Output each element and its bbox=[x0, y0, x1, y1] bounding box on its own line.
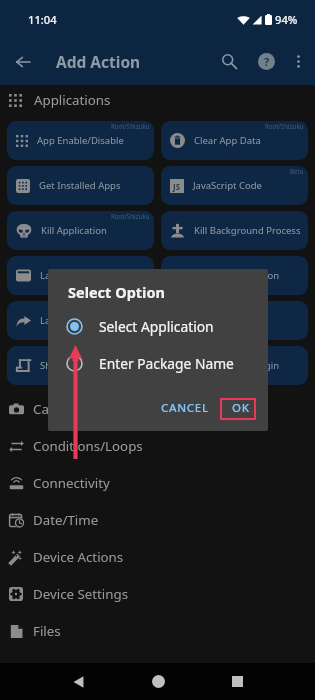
staticText: Launch Activity bbox=[40, 314, 108, 327]
staticText: 94% bbox=[275, 12, 298, 27]
button[interactable]: Home bbox=[138, 663, 178, 700]
staticText: Clear App Data bbox=[194, 134, 261, 147]
button[interactable]: Device Settings bbox=[0, 575, 315, 612]
button[interactable]: Set App Auto Login bbox=[161, 346, 308, 385]
button[interactable]: Root/Shizuku bbox=[7, 121, 154, 160]
button[interactable]: Root/Shizuku bbox=[161, 121, 308, 160]
button[interactable]: Share Text bbox=[161, 301, 308, 340]
staticText: Date/Time bbox=[33, 511, 99, 529]
staticText: Select Option bbox=[68, 282, 165, 302]
button[interactable]: OK bbox=[223, 394, 259, 422]
staticText: Root/Shizuku bbox=[265, 122, 304, 130]
button[interactable]: Shell Script bbox=[7, 346, 154, 385]
button[interactable]: Launch Application bbox=[161, 256, 308, 295]
staticText: App Enable/Disable bbox=[37, 134, 124, 147]
button[interactable]: Kill Background Process bbox=[161, 211, 308, 250]
staticText: Device Settings bbox=[33, 585, 129, 603]
staticText: Kill Application bbox=[41, 224, 107, 237]
staticText: Launch Application bbox=[194, 269, 279, 282]
button[interactable]: Launch App bbox=[7, 256, 154, 295]
staticText: Shell Script bbox=[40, 359, 90, 372]
button[interactable]: Conditions/Loops bbox=[0, 427, 315, 464]
button[interactable]: Recents bbox=[217, 663, 257, 700]
button[interactable]: Launch Activity bbox=[7, 301, 154, 340]
staticText: Connectivity bbox=[33, 474, 110, 492]
staticText: Root/Shizuku bbox=[111, 122, 150, 130]
staticText: Share Text bbox=[194, 314, 241, 327]
button[interactable]: Help bbox=[251, 46, 282, 77]
button[interactable]: Enter Package Name bbox=[48, 347, 268, 379]
button[interactable]: Back bbox=[0, 39, 45, 84]
button[interactable]: Beta bbox=[161, 166, 308, 205]
staticText: CANCEL bbox=[161, 400, 209, 416]
staticText: ? bbox=[264, 54, 270, 69]
button[interactable]: Search bbox=[212, 42, 251, 81]
button[interactable]: Back bbox=[58, 663, 98, 700]
staticText: JavaScript Code bbox=[193, 179, 262, 192]
button[interactable]: Files bbox=[0, 612, 315, 649]
staticText: Root/Shizuku bbox=[111, 212, 150, 220]
button[interactable]: Connectivity bbox=[0, 464, 315, 501]
button[interactable]: Camera bbox=[0, 390, 315, 427]
staticText: Files bbox=[33, 622, 61, 640]
staticText: Beta bbox=[290, 167, 304, 175]
staticText: Camera bbox=[33, 400, 82, 418]
staticText: Device Actions bbox=[33, 548, 124, 566]
staticText: Applications bbox=[34, 91, 111, 109]
staticText: Add Action bbox=[56, 51, 141, 72]
staticText: Get Installed Apps bbox=[39, 179, 121, 192]
staticText: Kill Background Process bbox=[194, 224, 301, 237]
button[interactable]: Date/Time bbox=[0, 501, 315, 538]
button[interactable]: Select Application bbox=[48, 310, 268, 342]
button[interactable]: Root/Shizuku bbox=[7, 211, 154, 250]
staticText: OK bbox=[232, 400, 250, 416]
staticText: Conditions/Loops bbox=[33, 437, 143, 455]
staticText: Set App Auto Login bbox=[194, 359, 280, 372]
staticText: 11:04 bbox=[28, 12, 57, 27]
staticText: Select Application bbox=[99, 317, 214, 336]
staticText: JS bbox=[173, 181, 181, 192]
staticText: Enter Package Name bbox=[99, 354, 234, 373]
button[interactable]: CANCEL bbox=[152, 394, 218, 422]
staticText: Launch App bbox=[40, 269, 93, 282]
button[interactable]: Get Installed Apps bbox=[7, 166, 154, 205]
button[interactable]: Device Actions bbox=[0, 538, 315, 575]
button[interactable]: More options bbox=[282, 45, 315, 78]
